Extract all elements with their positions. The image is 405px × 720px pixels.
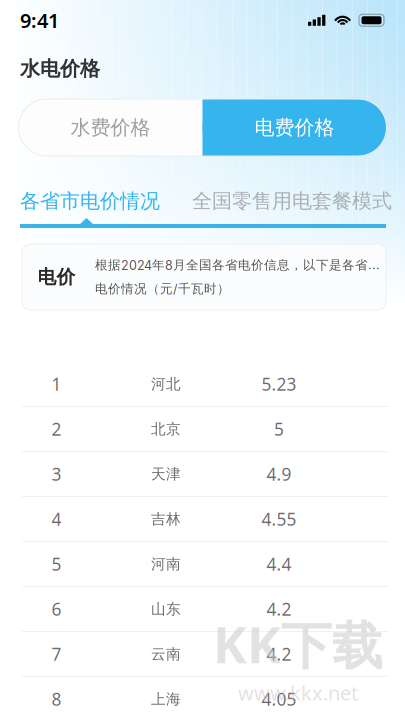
button[interactable]: 8 bbox=[0, 677, 405, 720]
staticText: 5 bbox=[274, 417, 284, 440]
staticText: 4.05 bbox=[261, 687, 296, 710]
button[interactable]: 电费价格 bbox=[202, 99, 386, 156]
staticText: 8 bbox=[51, 687, 61, 710]
staticText: 2 bbox=[51, 417, 61, 440]
button[interactable]: 6 bbox=[0, 587, 405, 632]
staticText: 吉林 bbox=[151, 510, 181, 528]
staticText: 1 bbox=[51, 372, 61, 395]
staticText: 水电价格 bbox=[20, 56, 100, 81]
staticText: 电费价格 bbox=[254, 115, 334, 140]
staticText: KK下载 bbox=[213, 610, 383, 677]
button[interactable]: 3 bbox=[0, 452, 405, 497]
staticText: 水费价格 bbox=[70, 115, 150, 140]
staticText: 4.2 bbox=[266, 597, 291, 620]
button[interactable]: 1 bbox=[0, 362, 405, 407]
button[interactable]: 5 bbox=[0, 542, 405, 587]
button[interactable]: 4 bbox=[0, 497, 405, 542]
button[interactable]: 全国零售用电套餐模式 bbox=[192, 186, 392, 216]
staticText: 4 bbox=[51, 507, 61, 530]
staticText: 5 bbox=[51, 552, 61, 575]
staticText: 上海 bbox=[151, 690, 181, 708]
staticText: 3 bbox=[51, 462, 61, 485]
button[interactable]: 2 bbox=[0, 407, 405, 452]
staticText: www.kkx.net bbox=[238, 679, 358, 706]
staticText: 各省市电价情况 bbox=[20, 189, 160, 213]
staticText: 4.2 bbox=[266, 642, 291, 665]
staticText: 河北 bbox=[151, 375, 181, 393]
staticText: 电价 bbox=[37, 265, 75, 288]
staticText: 4.4 bbox=[266, 552, 291, 575]
staticText: 5.23 bbox=[261, 372, 296, 395]
staticText: 根据2024年8月全国各省电价信息，以下是各省份的 bbox=[95, 257, 382, 273]
staticText: 4.9 bbox=[266, 462, 291, 485]
staticText: 山东 bbox=[151, 600, 181, 618]
button[interactable]: 水费价格 bbox=[18, 99, 202, 156]
staticText: 7 bbox=[51, 642, 61, 665]
staticText: 电价情况（元/千瓦时） bbox=[95, 281, 230, 297]
staticText: 6 bbox=[51, 597, 61, 620]
staticText: 全国零售用电套餐模式 bbox=[192, 189, 392, 213]
button[interactable]: 7 bbox=[0, 632, 405, 677]
staticText: 9:41 bbox=[20, 7, 59, 34]
button[interactable]: 各省市电价情况 bbox=[20, 186, 160, 216]
staticText: 4.55 bbox=[261, 507, 296, 530]
staticText: 天津 bbox=[151, 465, 181, 483]
staticText: 云南 bbox=[151, 645, 181, 663]
staticText: 北京 bbox=[151, 420, 181, 438]
staticText: 河南 bbox=[151, 555, 181, 573]
